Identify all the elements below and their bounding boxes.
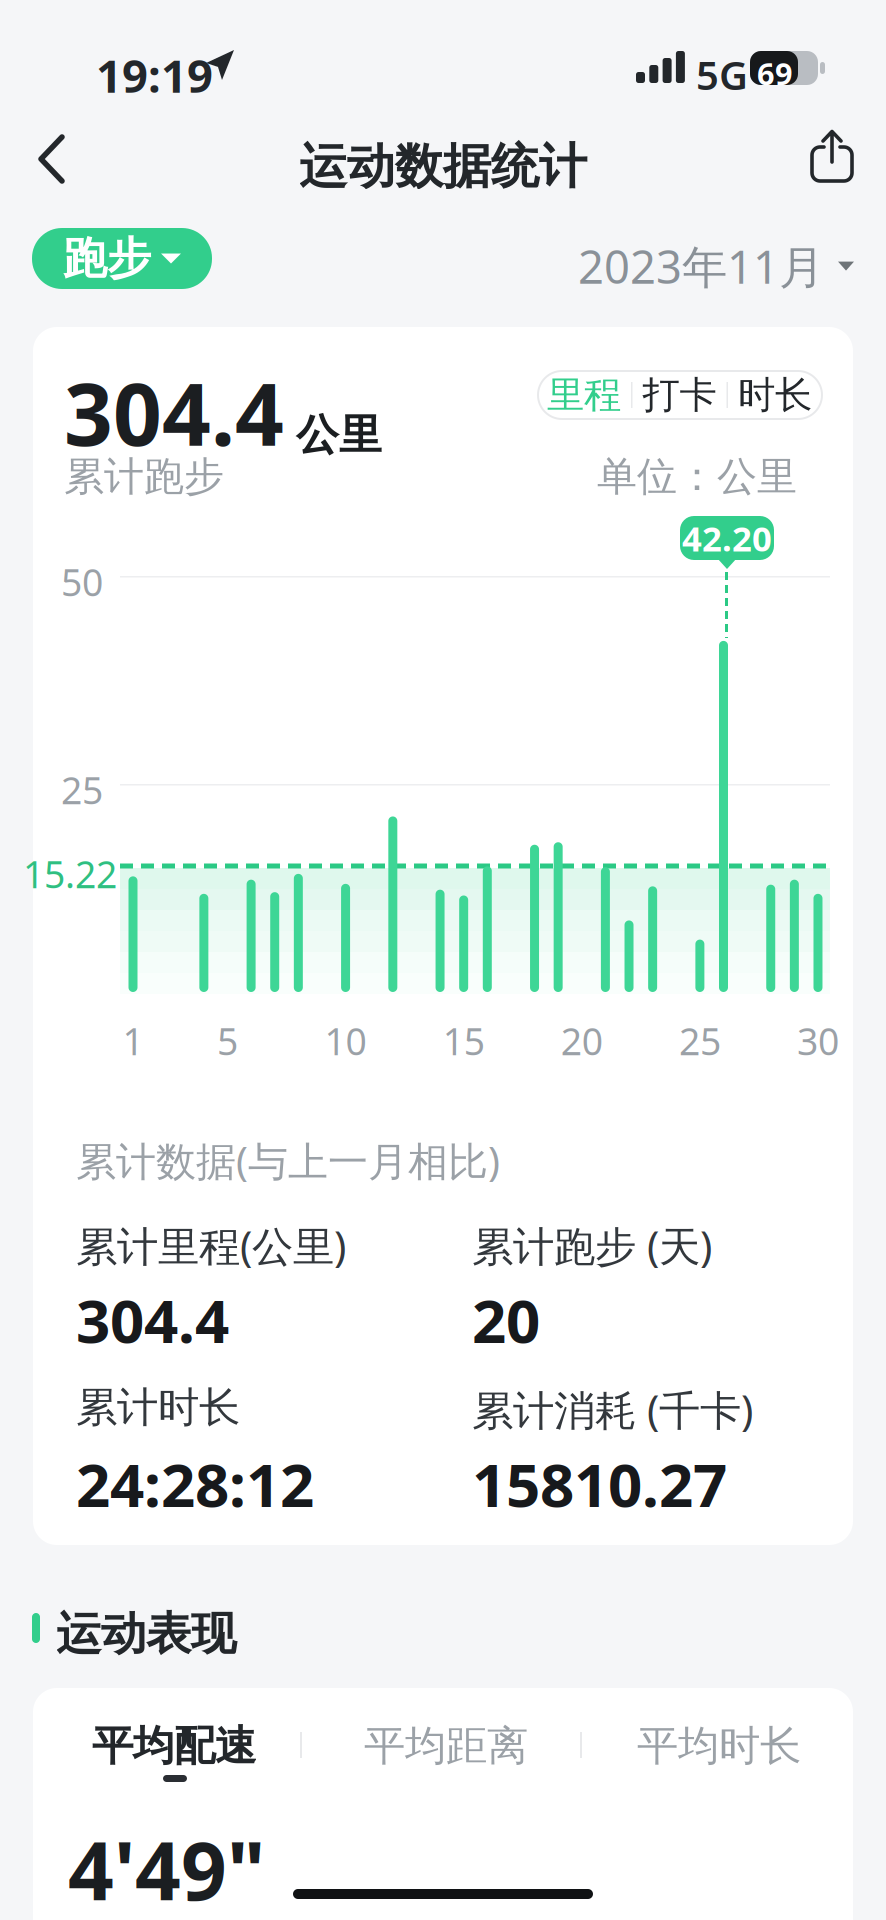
- button[interactable]: 平均配速: [84, 1724, 264, 1768]
- staticText: 累计跑步 (天): [472, 1218, 712, 1273]
- staticText: 15: [443, 1016, 485, 1066]
- staticText: 平均距离: [364, 1721, 528, 1771]
- staticText: 25: [61, 765, 103, 815]
- staticText: 跑步: [63, 231, 151, 285]
- staticText: 5: [217, 1016, 238, 1066]
- staticText: 平均时长: [637, 1721, 801, 1771]
- staticText: 69: [757, 53, 793, 94]
- staticText: 304.4: [64, 356, 284, 469]
- staticText: 2023年11月: [578, 236, 824, 296]
- staticText: 1: [122, 1016, 143, 1066]
- staticText: 累计消耗 (千卡): [472, 1382, 753, 1437]
- staticText: 20: [472, 1280, 540, 1360]
- staticText: 24:28:12: [76, 1444, 314, 1524]
- staticText: 50: [61, 557, 103, 607]
- button[interactable]: Share: [804, 126, 860, 186]
- staticText: 20: [561, 1016, 603, 1066]
- staticText: 42.20: [682, 515, 772, 561]
- staticText: 累计跑步: [64, 452, 224, 501]
- staticText: 运动数据统计: [299, 137, 587, 196]
- staticText: 单位：公里: [597, 452, 797, 501]
- staticText: 时长: [738, 372, 812, 418]
- staticText: 运动表现: [56, 1606, 236, 1662]
- button[interactable]: 里程: [537, 370, 631, 420]
- button[interactable]: 平均距离: [356, 1724, 536, 1768]
- staticText: 平均配速: [92, 1721, 256, 1771]
- staticText: 25: [679, 1016, 721, 1066]
- staticText: 5G: [696, 48, 748, 101]
- staticText: 公里: [296, 409, 382, 461]
- staticText: 4'49": [68, 1816, 265, 1920]
- staticText: 累计里程(公里): [76, 1218, 346, 1273]
- button[interactable]: Back: [28, 129, 88, 189]
- staticText: 打卡: [642, 372, 716, 418]
- button[interactable]: 跑步: [32, 228, 212, 289]
- staticText: 19:19: [96, 45, 213, 105]
- staticText: 304.4: [76, 1280, 229, 1360]
- button[interactable]: 时长: [728, 370, 822, 420]
- staticText: 30: [797, 1016, 839, 1066]
- button[interactable]: 2023年11月: [514, 236, 854, 296]
- staticText: 15810.27: [472, 1444, 727, 1524]
- staticText: 10: [325, 1016, 367, 1066]
- staticText: 里程: [547, 372, 621, 418]
- button[interactable]: 打卡: [632, 370, 726, 420]
- staticText: 累计数据(与上一月相比): [76, 1134, 500, 1187]
- staticText: 15.22: [23, 849, 117, 899]
- button[interactable]: 平均时长: [629, 1724, 809, 1768]
- staticText: 累计时长: [76, 1382, 240, 1433]
